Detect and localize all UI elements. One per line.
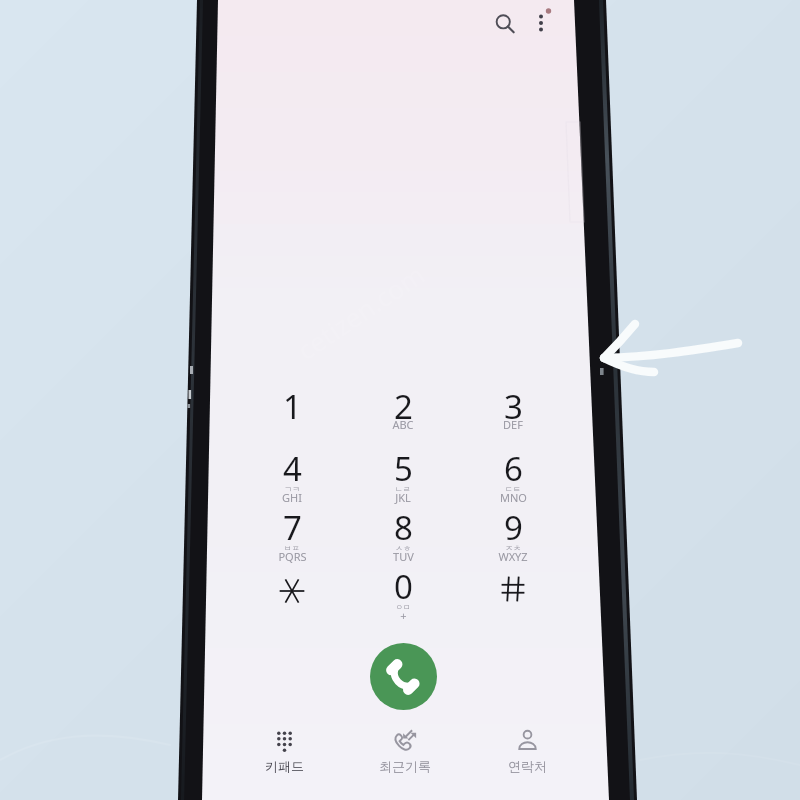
- button[interactable]: [461, 495, 565, 555]
- staticText: ㅇㅁ: [395, 602, 411, 612]
- staticText: 0: [394, 564, 413, 609]
- button[interactable]: [351, 374, 455, 434]
- button[interactable]: [351, 495, 455, 555]
- button[interactable]: [461, 436, 565, 496]
- button[interactable]: Search: [487, 6, 523, 42]
- staticText: ㄷㅌ: [505, 484, 521, 494]
- staticText: GHI: [282, 490, 302, 505]
- button[interactable]: [240, 554, 344, 614]
- button[interactable]: 키패드: [239, 729, 329, 774]
- button[interactable]: [240, 374, 344, 434]
- staticText: WXYZ: [498, 549, 528, 564]
- button[interactable]: 최근기록: [360, 729, 450, 774]
- staticText: 3: [504, 384, 523, 429]
- button[interactable]: More options: [524, 6, 558, 40]
- button[interactable]: [351, 436, 455, 496]
- staticText: TUV: [393, 549, 414, 564]
- staticText: JKL: [395, 490, 411, 505]
- button[interactable]: [351, 554, 455, 614]
- staticText: 6: [504, 446, 523, 491]
- button[interactable]: Call: [370, 643, 437, 710]
- staticText: ㅈㅊ: [505, 543, 521, 553]
- staticText: ㅂㅍ: [284, 543, 300, 553]
- staticText: 7: [283, 505, 302, 550]
- staticText: ㅅㅎ: [395, 543, 411, 553]
- staticText: 8: [394, 505, 413, 550]
- staticText: MNO: [500, 490, 527, 505]
- staticText: +: [400, 608, 407, 623]
- staticText: ㄱㅋ: [284, 484, 300, 494]
- staticText: ABC: [392, 417, 414, 432]
- staticText: 4: [283, 446, 302, 491]
- staticText: 5: [394, 446, 413, 491]
- button[interactable]: 연락처: [482, 729, 572, 774]
- staticText: DEF: [503, 417, 523, 432]
- staticText: PQRS: [278, 549, 307, 564]
- button[interactable]: [240, 495, 344, 555]
- staticText: 최근기록: [379, 758, 431, 774]
- staticText: 2: [394, 384, 413, 429]
- button[interactable]: [240, 436, 344, 496]
- button[interactable]: [461, 374, 565, 434]
- staticText: 연락처: [508, 758, 547, 774]
- staticText: ㄴㄹ: [395, 484, 411, 494]
- button[interactable]: [461, 554, 565, 614]
- staticText: 9: [504, 505, 523, 550]
- staticText: 키패드: [265, 758, 304, 774]
- staticText: 1: [283, 384, 302, 429]
